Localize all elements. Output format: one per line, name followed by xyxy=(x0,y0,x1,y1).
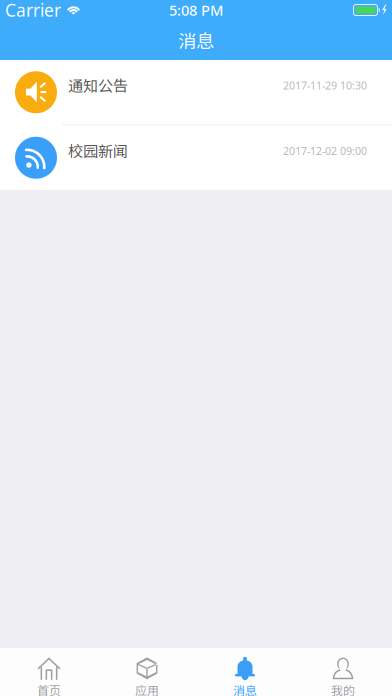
staticText: 5:08 PM xyxy=(169,0,223,20)
button[interactable]: 首页 xyxy=(0,645,98,696)
button[interactable]: 应用 xyxy=(98,645,196,696)
staticText: 校园新闻 xyxy=(68,139,128,161)
staticText: 消息 xyxy=(233,681,257,696)
staticText: 消息 xyxy=(178,27,214,53)
staticText: 首页 xyxy=(37,681,61,696)
staticText: 2017-11-29 10:30 xyxy=(283,78,367,92)
button[interactable]: 通知公告 xyxy=(0,60,392,124)
button[interactable]: 消息 xyxy=(196,645,294,696)
staticText: 通知公告 xyxy=(68,74,128,96)
staticText: 我的 xyxy=(331,681,355,696)
staticText: 2017-12-02 09:00 xyxy=(283,144,367,158)
staticText: 应用 xyxy=(135,681,159,696)
button[interactable]: 校园新闻 xyxy=(0,125,392,190)
button[interactable]: 我的 xyxy=(294,645,392,696)
staticText: Carrier xyxy=(5,0,61,21)
